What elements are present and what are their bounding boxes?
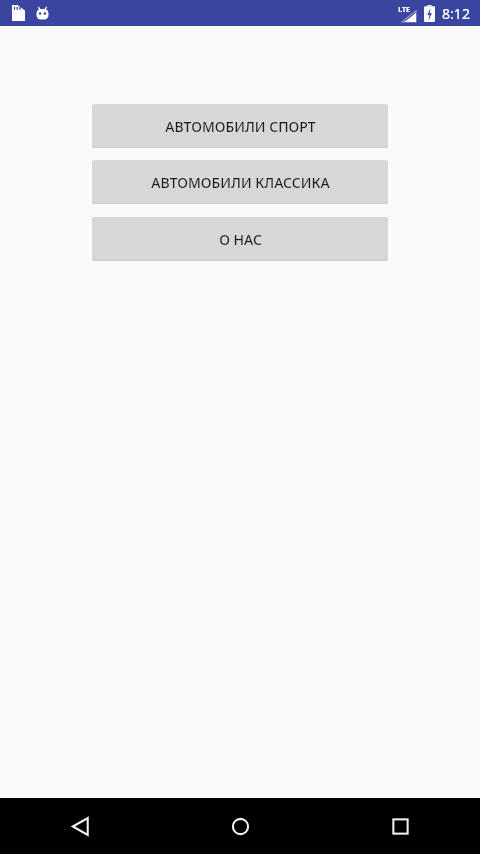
button[interactable]: О НАС — [92, 217, 388, 261]
button[interactable]: АВТОМОБИЛИ СПОРТ — [92, 104, 388, 148]
button[interactable]: Back — [0, 798, 160, 854]
staticText: АВТОМОБИЛИ КЛАССИКА — [151, 173, 330, 192]
staticText: LTE — [398, 5, 410, 15]
button[interactable]: АВТОМОБИЛИ КЛАССИКА — [92, 160, 388, 204]
staticText: АВТОМОБИЛИ СПОРТ — [165, 117, 316, 136]
button[interactable]: Home — [160, 798, 320, 854]
staticText: О НАС — [219, 230, 262, 249]
button[interactable]: Recent apps — [320, 798, 480, 854]
staticText: 8:12 — [442, 4, 470, 23]
